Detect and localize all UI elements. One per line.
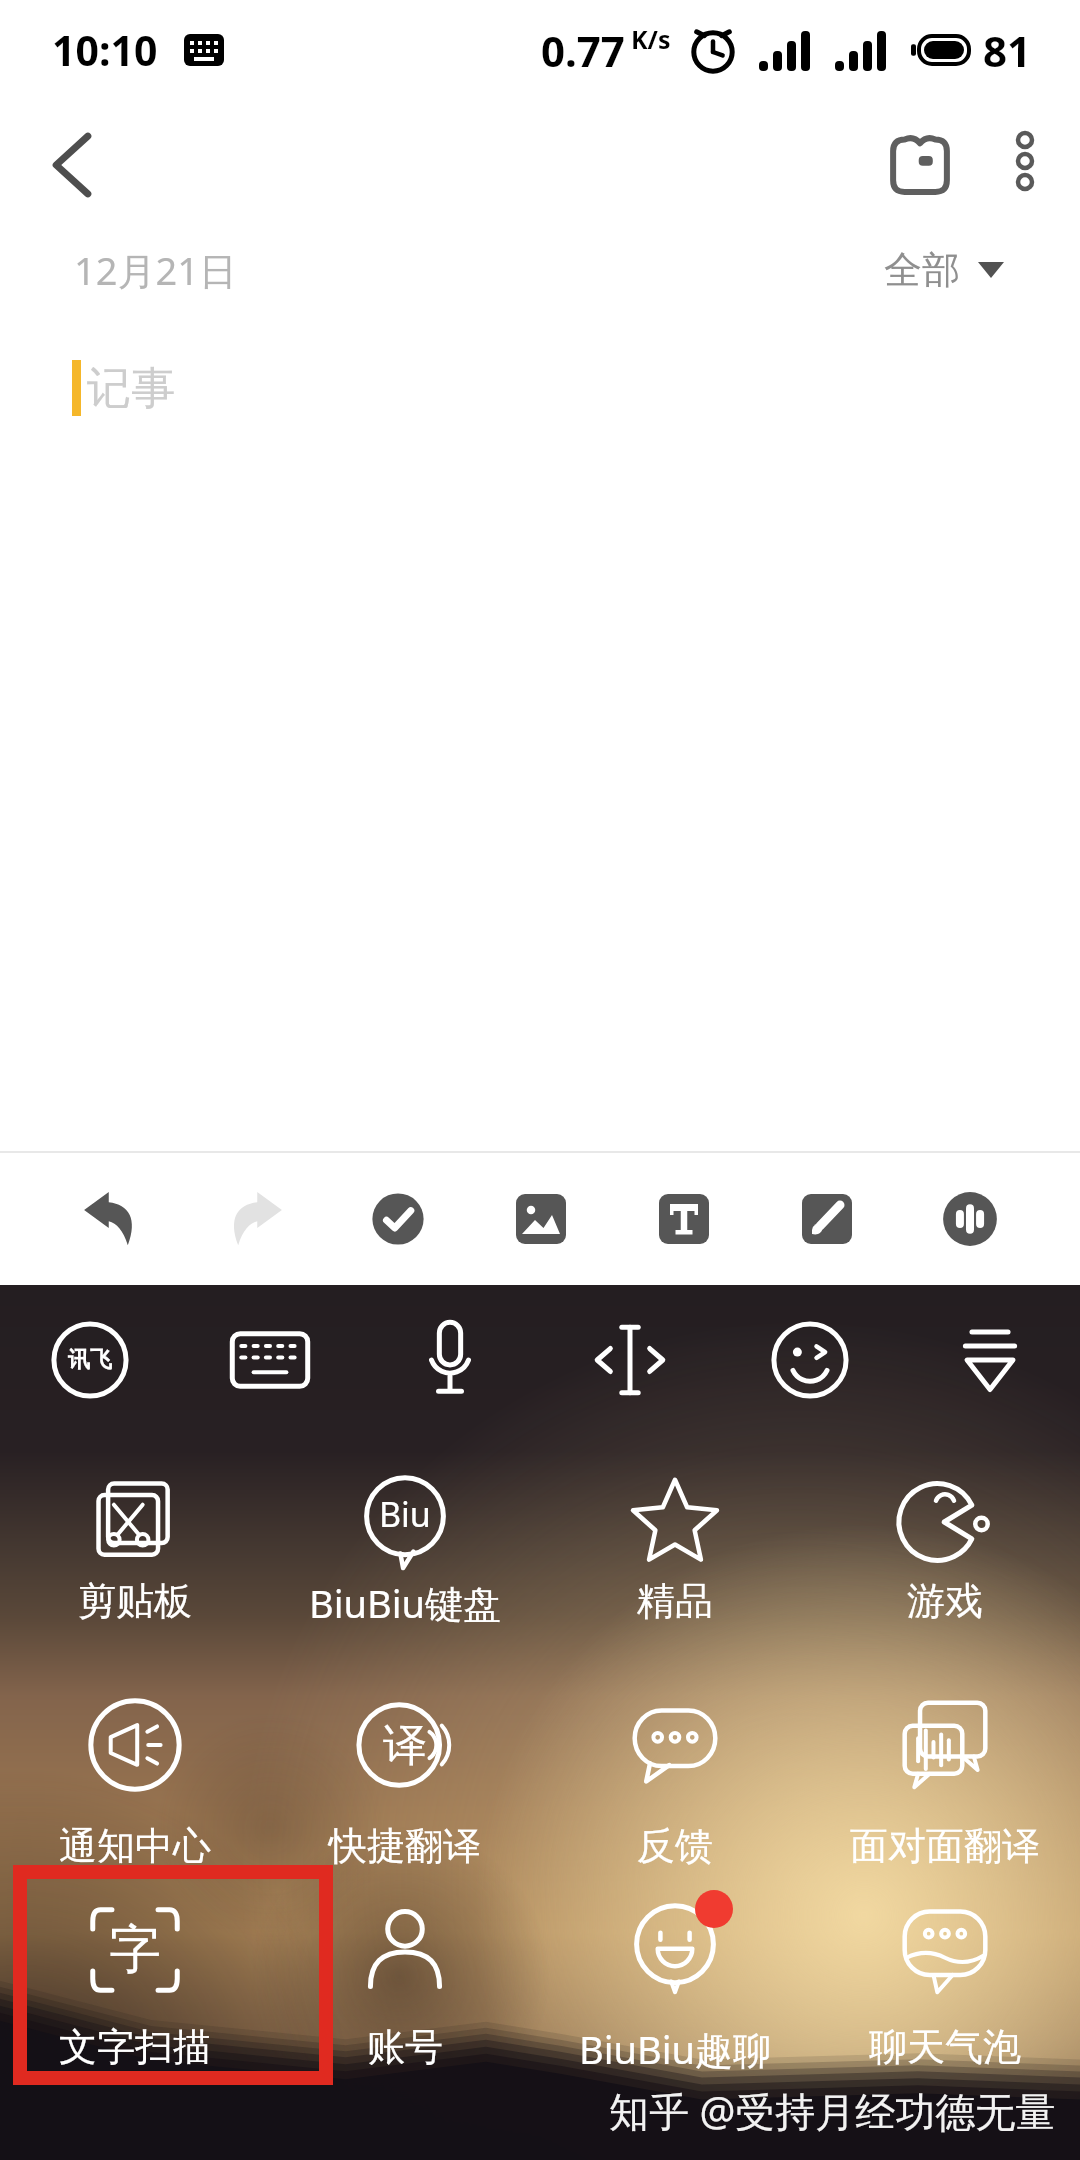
staticText: 0.77 bbox=[541, 22, 625, 79]
button[interactable]: 全部 bbox=[884, 246, 1004, 294]
button[interactable] bbox=[612, 1153, 755, 1285]
staticText: 反馈 bbox=[637, 1822, 713, 1870]
staticText: 通知中心 bbox=[59, 1822, 211, 1870]
button[interactable] bbox=[898, 1153, 1041, 1285]
staticText: 81 bbox=[983, 22, 1032, 79]
button[interactable]: 游戏 bbox=[810, 1467, 1080, 1625]
button[interactable] bbox=[540, 1315, 720, 1405]
staticText: 文字扫描 bbox=[59, 2023, 211, 2071]
button[interactable]: 通知中心 bbox=[0, 1690, 270, 1870]
button[interactable]: 聊天气泡 bbox=[810, 1895, 1080, 2071]
button[interactable]: 剪贴板 bbox=[0, 1467, 270, 1625]
button[interactable] bbox=[900, 1315, 1080, 1405]
button[interactable]: 面对面翻译 bbox=[810, 1690, 1080, 1870]
staticText: 10:10 bbox=[52, 22, 158, 78]
button[interactable]: BiuBiu趣聊 bbox=[540, 1895, 810, 2075]
staticText: K/s bbox=[631, 22, 671, 56]
button[interactable] bbox=[720, 1315, 900, 1405]
button[interactable] bbox=[755, 1153, 898, 1285]
button[interactable]: 反馈 bbox=[540, 1690, 810, 1870]
staticText: 精品 bbox=[637, 1577, 713, 1625]
button[interactable]: 译 bbox=[270, 1690, 540, 1870]
staticText: 全部 bbox=[884, 246, 960, 294]
button[interactable] bbox=[1010, 133, 1040, 197]
button[interactable] bbox=[183, 1153, 326, 1285]
staticText: 讯飞 bbox=[68, 1346, 112, 1374]
staticText: BiuBiu键盘 bbox=[309, 1577, 501, 1629]
button[interactable] bbox=[888, 133, 952, 197]
staticText: 记事 bbox=[87, 361, 175, 416]
staticText: 快捷翻译 bbox=[329, 1822, 481, 1870]
button[interactable]: Biu bbox=[270, 1467, 540, 1629]
button[interactable] bbox=[39, 1153, 183, 1285]
staticText: 12月21日 bbox=[74, 244, 237, 296]
staticText: 面对面翻译 bbox=[850, 1822, 1040, 1870]
button[interactable]: 账号 bbox=[270, 1895, 540, 2071]
button[interactable] bbox=[360, 1315, 540, 1405]
button[interactable]: 精品 bbox=[540, 1467, 810, 1625]
staticText: 聊天气泡 bbox=[869, 2023, 1021, 2071]
button[interactable]: 字 bbox=[0, 1895, 270, 2071]
staticText: 知乎 @受持月经功德无量 bbox=[609, 2083, 1056, 2138]
staticText: 译 bbox=[383, 1718, 427, 1773]
staticText: Biu bbox=[379, 1491, 431, 1537]
staticText: 字 bbox=[109, 1917, 161, 1983]
staticText: 游戏 bbox=[907, 1577, 983, 1625]
button[interactable]: 讯飞 bbox=[0, 1315, 180, 1405]
staticText: BiuBiu趣聊 bbox=[579, 2023, 771, 2075]
button[interactable] bbox=[469, 1153, 612, 1285]
staticText: 账号 bbox=[367, 2023, 443, 2071]
button[interactable] bbox=[326, 1153, 469, 1285]
button[interactable] bbox=[180, 1315, 360, 1405]
staticText: 剪贴板 bbox=[78, 1577, 192, 1625]
button[interactable] bbox=[36, 129, 108, 201]
